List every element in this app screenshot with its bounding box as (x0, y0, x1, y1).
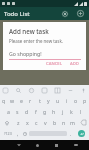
button[interactable]: More options (67, 87, 74, 94)
staticText: e (20, 97, 23, 104)
button[interactable]: f (31, 106, 40, 117)
staticText: Go shopping! (9, 50, 42, 57)
button[interactable]: t (35, 95, 44, 106)
staticText: Add new task (9, 27, 49, 35)
staticText: o (74, 97, 78, 104)
button[interactable]: s (13, 106, 22, 117)
button[interactable]: Add task (75, 8, 86, 19)
button[interactable]: q (0, 95, 8, 106)
button[interactable]: Emoji (28, 87, 35, 94)
button[interactable]: Gboard (2, 87, 9, 94)
staticText: ADD (70, 61, 79, 66)
button[interactable]: l (76, 106, 85, 117)
button[interactable]: u (53, 95, 62, 106)
button[interactable]: j (58, 106, 67, 117)
button[interactable]: i (62, 95, 71, 106)
staticText: ?123 (4, 131, 12, 136)
staticText: Todo List (4, 10, 30, 18)
button[interactable]: Shift (0, 117, 13, 128)
staticText: i (66, 97, 68, 104)
button[interactable]: x (23, 117, 32, 128)
button[interactable]: d (22, 106, 31, 117)
staticText: t (39, 97, 41, 104)
button[interactable]: . (67, 128, 75, 139)
button[interactable]: v (41, 117, 50, 128)
button[interactable]: CANCEL (44, 60, 64, 67)
button[interactable]: p (80, 95, 89, 106)
button[interactable]: Stickers (54, 87, 61, 94)
staticText: v (44, 119, 47, 126)
button[interactable]: ADD (68, 60, 81, 67)
button[interactable]: h (49, 106, 58, 117)
button[interactable]: Backspace (77, 117, 89, 128)
button[interactable]: Delete all (59, 8, 70, 19)
button[interactable]: GIF (41, 87, 48, 94)
button[interactable]: , (14, 128, 21, 139)
button[interactable]: Voice input (80, 87, 87, 94)
staticText: h (52, 108, 56, 115)
button[interactable]: o (71, 95, 80, 106)
button[interactable]: c (32, 117, 41, 128)
staticText: z (17, 119, 20, 126)
button[interactable]: m (68, 117, 77, 128)
staticText: p (83, 97, 87, 104)
button[interactable]: e (17, 95, 26, 106)
staticText: m (70, 119, 75, 126)
staticText: CANCEL (46, 61, 62, 66)
staticText: b (53, 119, 57, 126)
staticText: d (25, 108, 29, 115)
button[interactable]: k (67, 106, 76, 117)
button[interactable]: a (4, 106, 13, 117)
button[interactable]: g (40, 106, 49, 117)
button[interactable]: y (44, 95, 53, 106)
staticText: Please enter the new task. (9, 38, 63, 44)
staticText: s (16, 108, 19, 115)
staticText: g (43, 108, 47, 115)
staticText: q (2, 97, 6, 104)
button[interactable]: n (59, 117, 68, 128)
staticText: c (35, 119, 38, 126)
button[interactable]: z (13, 117, 23, 128)
staticText: y (47, 97, 50, 104)
button[interactable]: Enter (75, 128, 88, 139)
staticText: j (62, 108, 64, 115)
staticText: , (17, 130, 19, 137)
staticText: x (26, 119, 29, 126)
button[interactable]: Back (10, 140, 28, 150)
staticText: n (62, 119, 66, 126)
button[interactable]: Clock (21, 128, 29, 139)
button[interactable]: r (26, 95, 35, 106)
staticText: k (70, 108, 73, 115)
button[interactable]: Home (28, 140, 47, 150)
staticText: r (29, 97, 32, 104)
staticText: . (70, 130, 72, 137)
staticText: a (7, 108, 10, 115)
staticText: u (56, 97, 60, 104)
staticText: f (35, 108, 37, 115)
button[interactable]: Search (15, 87, 22, 94)
staticText: w (10, 97, 15, 104)
button[interactable]: ?123 (1, 128, 14, 139)
staticText: l (80, 108, 82, 115)
button[interactable]: Switch keyboard (66, 140, 85, 150)
button[interactable]: Recents (47, 140, 66, 150)
button[interactable]: b (50, 117, 59, 128)
button[interactable]: w (8, 95, 17, 106)
